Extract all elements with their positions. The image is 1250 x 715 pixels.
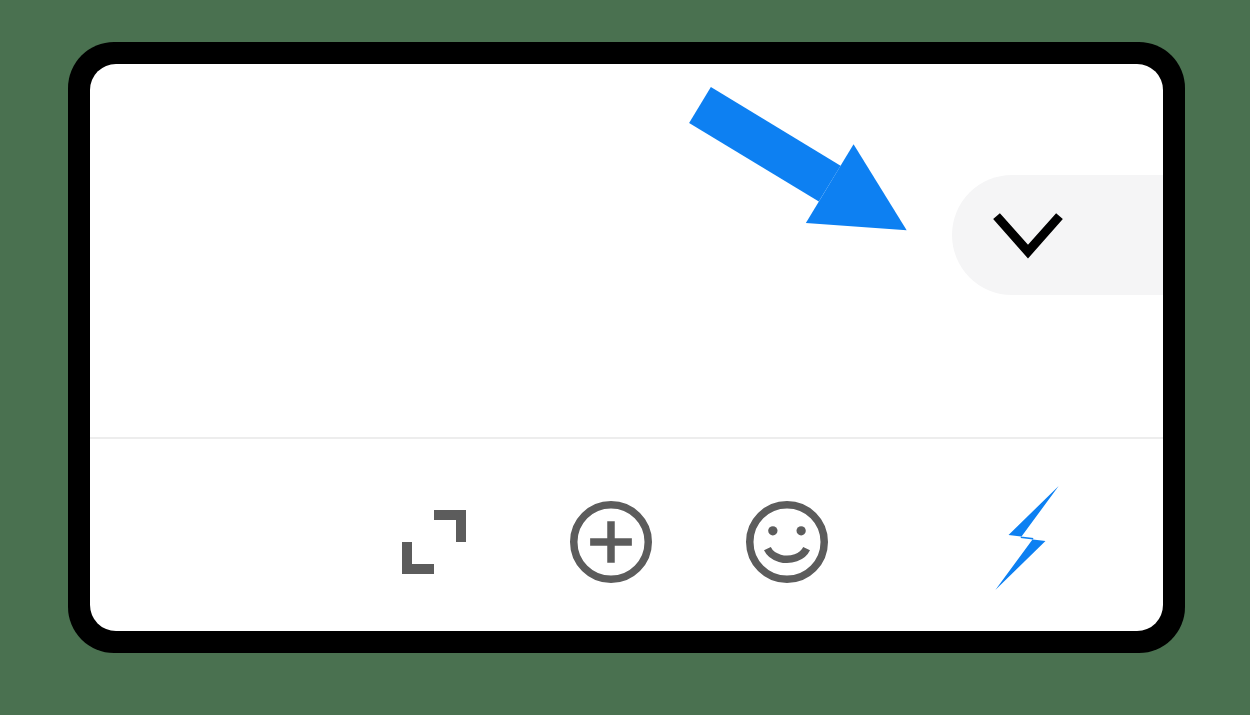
button[interactable]: Send — [973, 484, 1081, 592]
button[interactable]: Emoji — [733, 488, 841, 596]
button[interactable]: Collapse keyboard — [952, 175, 1163, 295]
button[interactable]: Add attachment — [557, 488, 665, 596]
button[interactable]: Expand — [380, 488, 488, 596]
